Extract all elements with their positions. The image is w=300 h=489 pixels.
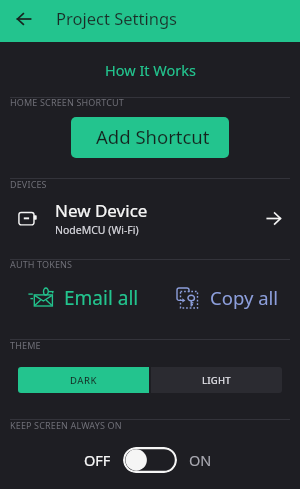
staticText: ON [189, 450, 212, 470]
button[interactable]: Keep screen always on [123, 447, 177, 473]
button[interactable]: DARK [18, 367, 149, 393]
staticText: LIGHT [202, 374, 231, 387]
staticText: Email all [64, 285, 139, 311]
staticText: THEME [10, 339, 41, 351]
staticText: DEVICES [10, 178, 47, 190]
button[interactable]: Copy all [163, 278, 289, 316]
staticText: NodeMCU (Wi-Fi) [55, 223, 139, 237]
staticText: Add Shortcut [96, 124, 210, 149]
staticText: DARK [70, 374, 97, 387]
button[interactable]: Add Shortcut [71, 117, 229, 158]
button[interactable]: LIGHT [151, 367, 282, 393]
staticText: HOME SCREEN SHORTCUT [10, 96, 124, 108]
other: Open device [252, 190, 300, 242]
staticText: AUTH TOKENS [10, 258, 73, 270]
staticText: How It Works [105, 60, 196, 80]
staticText: New Device [55, 199, 148, 222]
button[interactable]: New Device [0, 190, 300, 242]
staticText: Project Settings [56, 7, 177, 29]
staticText: KEEP SCREEN ALWAYS ON [10, 419, 122, 431]
button[interactable]: How It Works [0, 42, 300, 97]
button[interactable]: Email all [14, 278, 150, 316]
button[interactable]: Back [0, 0, 41, 42]
staticText: OFF [84, 450, 111, 470]
staticText: Copy all [210, 285, 279, 310]
